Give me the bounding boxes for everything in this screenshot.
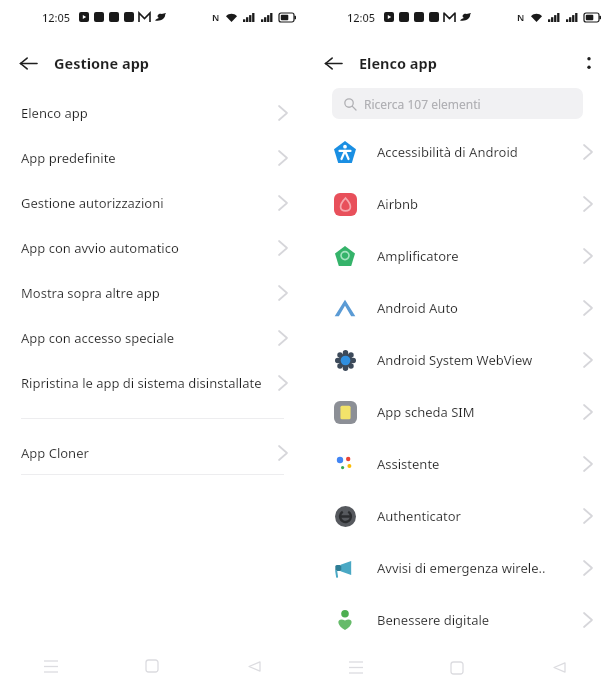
- button[interactable]: App con avvio automatico: [0, 225, 305, 270]
- staticText: App scheda SIM: [377, 403, 584, 421]
- button[interactable]: Benessere digitale: [305, 594, 610, 646]
- staticText: Mostra sopra altre app: [21, 284, 279, 302]
- button[interactable]: Recent apps: [305, 646, 406, 689]
- button[interactable]: Ripristina le app di sistema disinstalla…: [0, 360, 305, 405]
- staticText: Android System WebView: [377, 351, 584, 369]
- staticText: N: [212, 11, 220, 23]
- button[interactable]: Recent apps: [0, 643, 101, 689]
- button[interactable]: Assistente: [305, 438, 610, 490]
- staticText: Gestione autorizzazioni: [21, 194, 279, 212]
- button[interactable]: Back: [317, 47, 349, 79]
- staticText: App predefinite: [21, 149, 279, 167]
- button[interactable]: Airbnb: [305, 178, 610, 230]
- button[interactable]: Accessibilità di Android: [305, 126, 610, 178]
- button[interactable]: Home: [406, 646, 508, 689]
- staticText: Airbnb: [377, 195, 584, 213]
- staticText: App con accesso speciale: [21, 329, 279, 347]
- staticText: Accessibilità di Android: [377, 143, 584, 161]
- staticText: Assistente: [377, 455, 584, 473]
- button[interactable]: Gestione autorizzazioni: [0, 180, 305, 225]
- staticText: Elenco app: [21, 104, 279, 122]
- staticText: Android Auto: [377, 299, 584, 317]
- staticText: App Cloner: [21, 444, 279, 462]
- button[interactable]: App scheda SIM: [305, 386, 610, 438]
- button[interactable]: Ricerca 107 elementi: [332, 88, 583, 119]
- button[interactable]: Android Auto: [305, 282, 610, 334]
- button[interactable]: Elenco app: [0, 90, 305, 135]
- button[interactable]: App predefinite: [0, 135, 305, 180]
- staticText: App con avvio automatico: [21, 239, 279, 257]
- button[interactable]: Avvisi di emergenza wirele..: [305, 542, 610, 594]
- button[interactable]: Mostra sopra altre app: [0, 270, 305, 315]
- staticText: Amplificatore: [377, 247, 584, 265]
- staticText: N: [517, 11, 525, 23]
- button[interactable]: App con accesso speciale: [0, 315, 305, 360]
- staticText: 12:05: [347, 10, 376, 25]
- staticText: Avvisi di emergenza wirele..: [377, 559, 584, 577]
- staticText: Benessere digitale: [377, 611, 584, 629]
- button[interactable]: Home: [101, 643, 203, 689]
- button[interactable]: Back: [12, 47, 44, 79]
- staticText: Elenco app: [359, 53, 437, 73]
- staticText: Authenticator: [377, 507, 584, 525]
- button[interactable]: Authenticator: [305, 490, 610, 542]
- staticText: 12:05: [42, 10, 71, 25]
- staticText: Ripristina le app di sistema disinstalla…: [21, 374, 279, 392]
- button[interactable]: Amplificatore: [305, 230, 610, 282]
- staticText: Gestione app: [54, 53, 149, 73]
- button[interactable]: App Cloner: [0, 432, 305, 474]
- button[interactable]: Android System WebView: [305, 334, 610, 386]
- button[interactable]: More options: [574, 48, 604, 78]
- staticText: Ricerca 107 elementi: [364, 96, 481, 112]
